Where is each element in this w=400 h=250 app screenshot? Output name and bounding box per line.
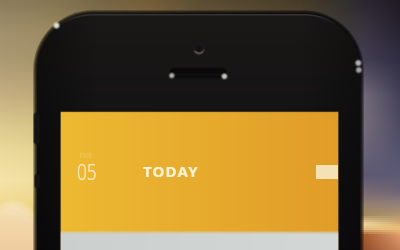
button[interactable]: 05 — [77, 158, 97, 187]
button[interactable]: TUE — [79, 151, 93, 160]
staticText: TUE — [79, 151, 93, 160]
button[interactable]: TODAY — [143, 161, 199, 181]
staticText: 05 — [77, 158, 97, 187]
staticText: TODAY — [143, 161, 199, 181]
